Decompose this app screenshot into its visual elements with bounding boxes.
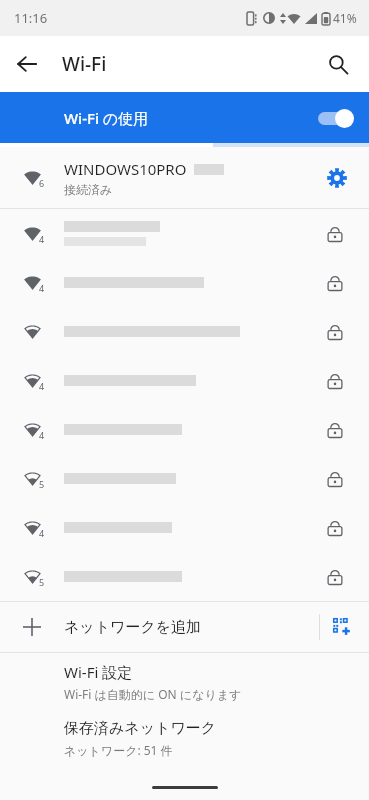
- button[interactable]: ネットワークを追加: [0, 602, 369, 652]
- staticText: 5: [39, 478, 45, 490]
- button[interactable]: Scan QR code: [320, 605, 364, 649]
- button[interactable]: Secured network: [315, 312, 355, 352]
- button[interactable]: 4: [0, 209, 369, 258]
- button[interactable]: 4: [0, 356, 369, 405]
- staticText: 41%: [333, 10, 357, 26]
- staticText: 4: [39, 429, 45, 441]
- button[interactable]: Secured network: [315, 361, 355, 401]
- staticText: WINDOWS10PRO: [64, 159, 187, 179]
- button[interactable]: 5: [0, 454, 369, 503]
- button[interactable]: Secured network: [315, 263, 355, 303]
- button[interactable]: Secured network: [315, 557, 355, 597]
- staticText: ネットワークを追加: [64, 618, 202, 637]
- button[interactable]: 4: [0, 503, 369, 552]
- staticText: Wi-Fi 設定: [64, 662, 133, 682]
- button[interactable]: 5: [0, 552, 369, 601]
- button[interactable]: 保存済みネットワーク: [0, 710, 369, 767]
- staticText: 4: [39, 527, 45, 539]
- staticText: 4: [39, 233, 45, 245]
- staticText: 保存済みネットワーク: [64, 719, 217, 738]
- button[interactable]: Network settings: [315, 156, 359, 200]
- staticText: Wi-Fi は自動的に ON になります: [64, 686, 242, 702]
- button[interactable]: Back: [5, 42, 49, 86]
- button[interactable]: Secured network: [0, 307, 369, 356]
- staticText: ネットワーク: 51 件: [64, 742, 173, 758]
- button[interactable]: Secured network: [315, 214, 355, 254]
- staticText: 5: [39, 576, 45, 588]
- staticText: 6: [39, 177, 45, 189]
- button[interactable]: 4: [0, 405, 369, 454]
- button[interactable]: 6: [0, 147, 369, 208]
- staticText: 4: [39, 380, 45, 392]
- button[interactable]: Wi-Fi 設定: [0, 653, 369, 710]
- staticText: Wi-Fi の使用: [64, 108, 149, 128]
- button[interactable]: Search: [316, 42, 360, 86]
- button[interactable]: Wi-Fi の使用: [0, 92, 369, 143]
- staticText: 接続済み: [64, 182, 113, 197]
- button[interactable]: Secured network: [315, 459, 355, 499]
- staticText: 4: [39, 282, 45, 294]
- staticText: 11:16: [14, 9, 48, 27]
- button[interactable]: Secured network: [315, 508, 355, 548]
- staticText: Wi-Fi: [62, 51, 107, 77]
- button[interactable]: 4: [0, 258, 369, 307]
- button[interactable]: Secured network: [315, 410, 355, 450]
